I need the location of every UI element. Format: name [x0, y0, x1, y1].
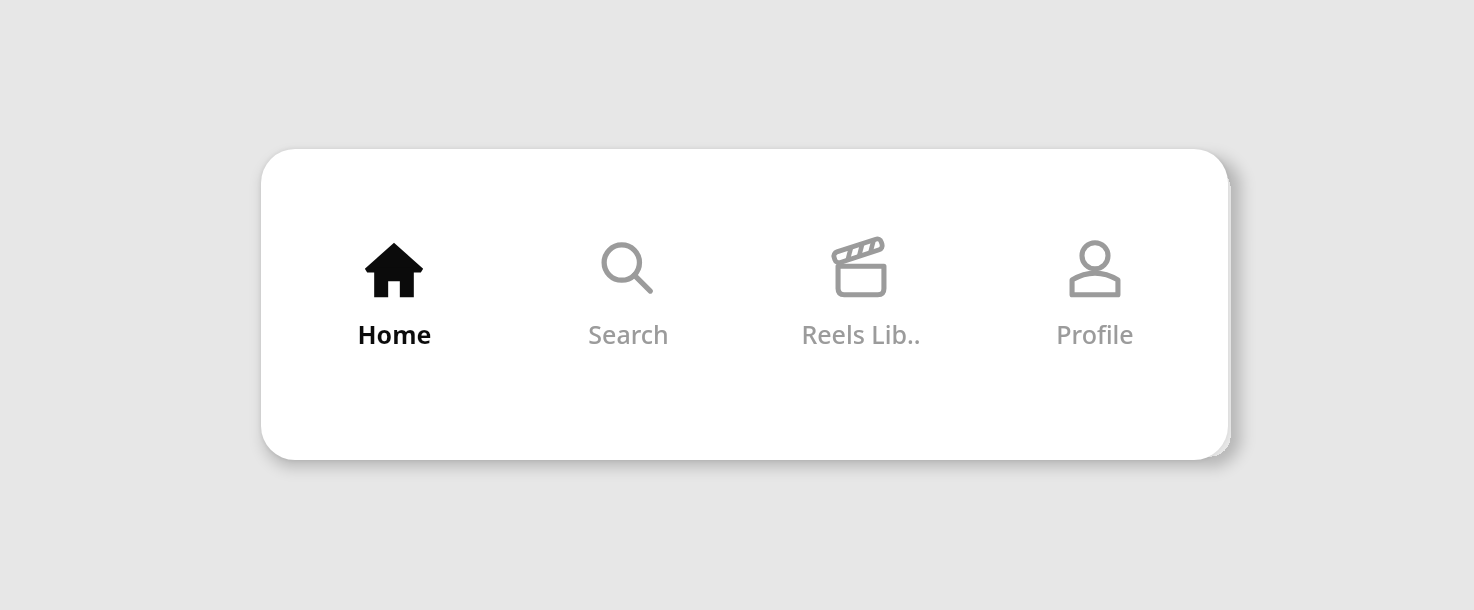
- button[interactable]: Profile: [995, 239, 1195, 351]
- button[interactable]: Home: [294, 239, 494, 351]
- staticText: Reels Lib..: [801, 317, 921, 351]
- staticText: Home: [357, 317, 432, 351]
- button[interactable]: Reels Lib..: [761, 239, 961, 351]
- button[interactable]: Search: [528, 239, 728, 351]
- staticText: Search: [588, 317, 669, 351]
- staticText: Profile: [1056, 317, 1134, 351]
